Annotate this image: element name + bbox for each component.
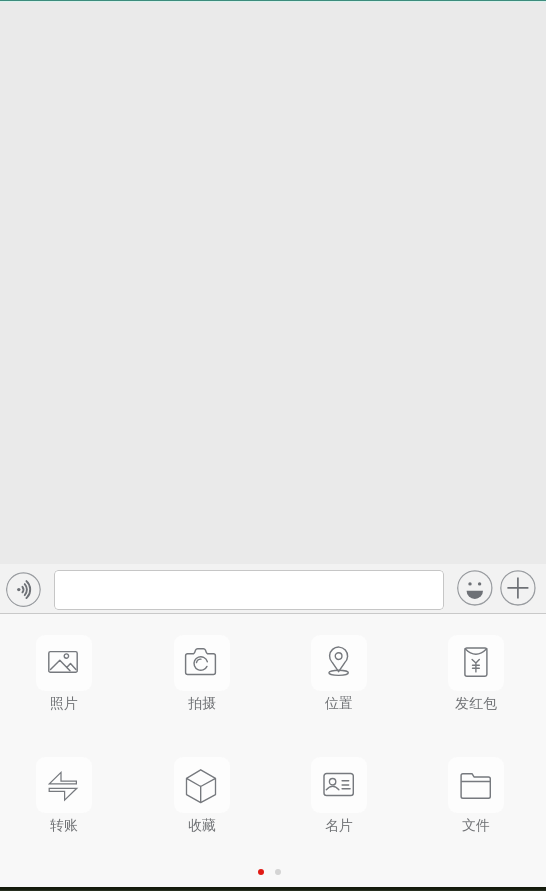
button[interactable]	[54, 570, 444, 610]
button[interactable]: 照片	[0, 635, 133, 713]
button[interactable]: Emoji	[457, 570, 493, 606]
button[interactable]: Voice input	[6, 572, 41, 607]
button[interactable]: 拍摄	[133, 635, 270, 713]
button[interactable]: 名片	[270, 757, 407, 835]
staticText: 位置	[325, 695, 353, 713]
button[interactable]: 发红包	[407, 635, 544, 713]
button[interactable]: 位置	[270, 635, 407, 713]
staticText: 文件	[462, 817, 490, 835]
staticText: 照片	[50, 695, 78, 713]
button[interactable]: 转账	[0, 757, 133, 835]
staticText: 收藏	[188, 817, 216, 835]
staticText: 发红包	[455, 695, 497, 713]
staticText: 转账	[50, 817, 78, 835]
staticText: 拍摄	[188, 695, 216, 713]
button[interactable]: 收藏	[133, 757, 270, 835]
button[interactable]: More functions	[500, 570, 536, 606]
staticText: 名片	[325, 817, 353, 835]
button[interactable]: 文件	[407, 757, 544, 835]
